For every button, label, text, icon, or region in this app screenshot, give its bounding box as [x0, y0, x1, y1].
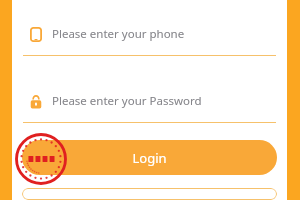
button[interactable]: Login: [22, 140, 277, 175]
other: Phone: [30, 27, 42, 42]
button[interactable]: Phone: [12, 20, 287, 48]
staticText: Please enter your phone: [52, 26, 185, 42]
staticText: Login: [132, 149, 167, 167]
staticText: Please enter your Password: [52, 93, 202, 109]
button[interactable]: Password: [12, 87, 287, 115]
button[interactable]: [22, 188, 277, 200]
other: Password: [30, 94, 42, 109]
